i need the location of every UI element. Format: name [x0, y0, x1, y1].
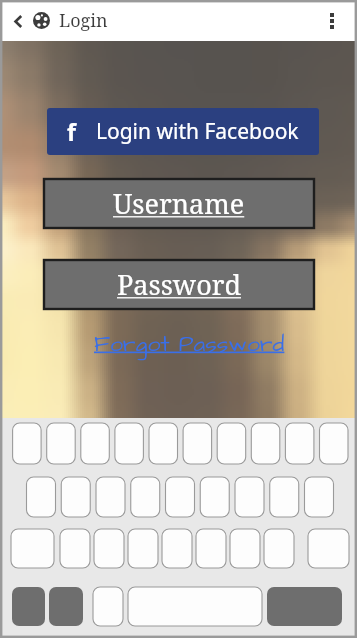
button[interactable]: Username [44, 179, 314, 228]
button[interactable]: Back [3, 2, 33, 40]
staticText: Forgot Password [94, 328, 285, 360]
button[interactable]: More options [315, 2, 349, 40]
staticText: f [67, 116, 76, 147]
button[interactable]: Password [44, 260, 314, 309]
staticText: Login with Facebook [96, 117, 299, 146]
staticText: Username [113, 185, 245, 222]
button[interactable]: Forgot Password [92, 328, 287, 360]
button[interactable]: f [47, 108, 319, 155]
staticText: Login [59, 8, 108, 33]
staticText: Password [117, 266, 242, 303]
